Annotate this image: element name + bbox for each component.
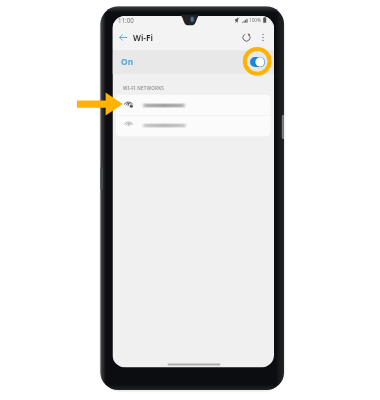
button[interactable]: Back bbox=[116, 30, 130, 44]
button[interactable]: Refresh bbox=[239, 30, 254, 45]
staticText: 100% bbox=[249, 17, 261, 23]
button[interactable] bbox=[113, 115, 275, 135]
staticText: 11:00 bbox=[118, 16, 134, 24]
other: Wi-Fi on bbox=[249, 56, 265, 67]
button[interactable]: More options bbox=[256, 30, 270, 44]
staticText: Wi-Fi bbox=[133, 32, 153, 43]
staticText: On bbox=[121, 56, 134, 67]
button[interactable]: On bbox=[113, 49, 275, 73]
staticText: WI-FI NETWORKS bbox=[123, 85, 165, 91]
button[interactable] bbox=[113, 95, 275, 115]
